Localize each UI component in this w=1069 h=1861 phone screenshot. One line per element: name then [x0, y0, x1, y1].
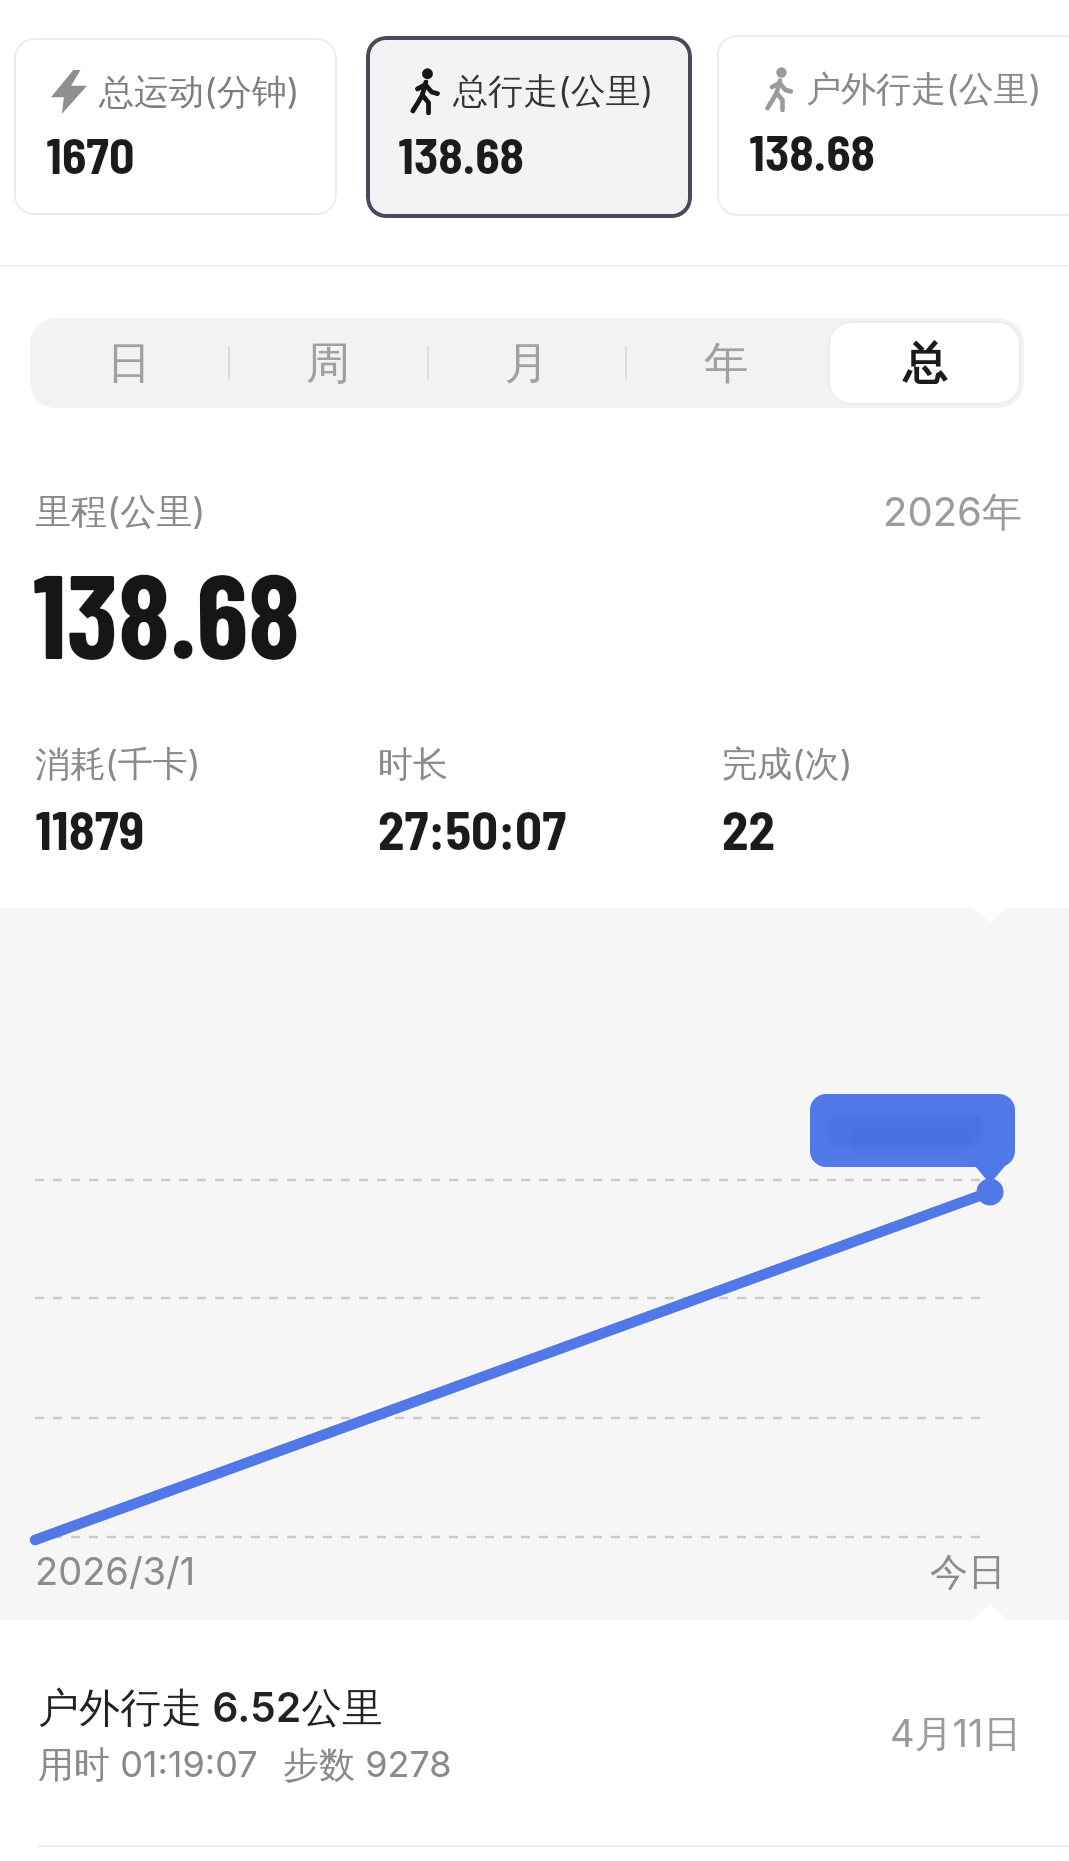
button[interactable]: 总 — [828, 321, 1021, 405]
staticText: 总 — [903, 336, 947, 391]
staticText: 日 — [107, 336, 151, 391]
button[interactable]: 日 — [33, 321, 225, 405]
button[interactable]: 周 — [231, 321, 424, 405]
staticText: 时长 — [378, 742, 448, 786]
button[interactable]: 户外行走 6.52公里 — [0, 1650, 1069, 1845]
staticText: 完成(次) — [722, 742, 853, 786]
staticText: 年 — [704, 336, 748, 391]
button[interactable]: 户外行走(公里) — [717, 35, 1069, 216]
staticText: 2026/3/1 — [35, 1548, 196, 1594]
staticText: 消耗(千卡) — [35, 742, 201, 786]
button[interactable]: 总运动(分钟) — [14, 38, 337, 215]
staticText: 1670 — [46, 124, 135, 184]
staticText: 户外行走(公里) — [806, 67, 1042, 111]
staticText: 今日 — [930, 1548, 1006, 1596]
staticText: 月 — [505, 336, 549, 391]
staticText: 周 — [306, 336, 350, 391]
button[interactable]: 总行走(公里) — [366, 36, 692, 218]
staticText: 138.68 — [33, 541, 301, 683]
staticText: 22 — [722, 797, 775, 861]
staticText: 里程(公里) — [35, 489, 206, 535]
button[interactable]: 月 — [430, 321, 623, 405]
staticText: 户外行走 6.52公里 — [38, 1682, 384, 1734]
staticText: 2026年 — [883, 487, 1022, 538]
staticText: 总行走(公里) — [453, 69, 654, 113]
staticText: 138.68 — [398, 124, 525, 184]
staticText: 步数 9278 — [283, 1742, 452, 1788]
staticText: 11879 — [35, 797, 145, 861]
staticText: 138.68 — [749, 121, 876, 181]
staticText: 4月11日 — [890, 1710, 1022, 1758]
button[interactable]: 年 — [629, 321, 822, 405]
staticText: 总运动(分钟) — [99, 70, 300, 114]
staticText: 27:50:07 — [378, 797, 567, 861]
staticText: 用时 01:19:07 — [38, 1742, 258, 1788]
